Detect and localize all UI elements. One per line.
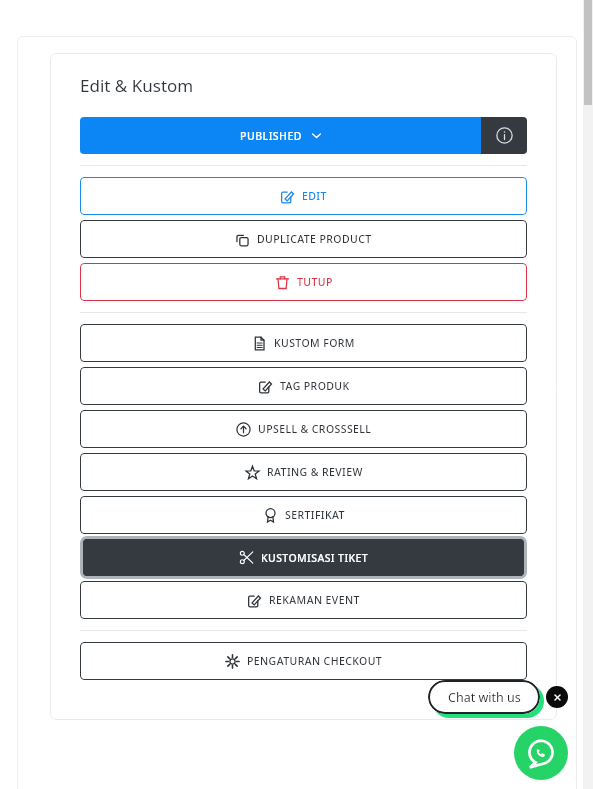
button[interactable]: SERTIFIKAT: [80, 496, 527, 534]
button[interactable]: PUBLISHED: [80, 117, 481, 154]
button[interactable]: UPSELL & CROSSSELL: [80, 410, 527, 448]
button[interactable]: Info: [481, 117, 527, 154]
button[interactable]: TAG PRODUK: [80, 367, 527, 405]
button[interactable]: Close chat: [546, 686, 568, 708]
button[interactable]: PENGATURAN CHECKOUT: [80, 642, 527, 680]
staticText: REKAMAN EVENT: [269, 593, 360, 607]
staticText: TAG PRODUK: [280, 379, 350, 393]
staticText: SERTIFIKAT: [285, 508, 345, 522]
button[interactable]: DUPLICATE PRODUCT: [80, 220, 527, 258]
button[interactable]: KUSTOM FORM: [80, 324, 527, 362]
button[interactable]: Chat on WhatsApp: [514, 726, 568, 780]
staticText: KUSTOMISASI TIKET: [261, 551, 369, 565]
button[interactable]: RATING & REVIEW: [80, 453, 527, 491]
staticText: EDIT: [302, 189, 327, 203]
staticText: PUBLISHED: [240, 129, 302, 143]
staticText: KUSTOM FORM: [274, 336, 355, 350]
staticText: Edit & Kustom: [80, 74, 194, 97]
button[interactable]: Chat with us: [428, 680, 540, 714]
button[interactable]: EDIT: [80, 177, 527, 215]
staticText: RATING & REVIEW: [267, 465, 363, 479]
staticText: DUPLICATE PRODUCT: [257, 232, 372, 246]
button[interactable]: TUTUP: [80, 263, 527, 301]
staticText: Chat with us: [448, 689, 521, 706]
staticText: TUTUP: [297, 275, 333, 289]
staticText: UPSELL & CROSSSELL: [258, 422, 372, 436]
button[interactable]: REKAMAN EVENT: [80, 581, 527, 619]
staticText: PENGATURAN CHECKOUT: [247, 654, 383, 668]
button[interactable]: KUSTOMISASI TIKET: [83, 539, 524, 576]
